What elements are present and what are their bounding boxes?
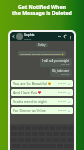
button[interactable]: And I love You (13, 90, 71, 95)
button[interactable]: I will call you tonight (42, 59, 70, 66)
staticText: Scotts need to night (13, 99, 47, 104)
button[interactable]: Ok, take care (52, 69, 70, 76)
button[interactable]: For Dinner as 9:0ne (13, 108, 71, 113)
button[interactable]: Scotts need to night (13, 99, 71, 104)
button[interactable]: More options (68, 35, 72, 39)
staticText: 9:55 am (58, 109, 67, 112)
button[interactable]: Call (63, 34, 68, 39)
staticText: 9:44 am (61, 73, 70, 76)
button[interactable]: Back (11, 34, 16, 39)
staticText: online (24, 37, 31, 40)
staticText: Ok, take care (52, 69, 70, 73)
button[interactable]: You are So Beautiful (13, 81, 71, 86)
staticText: Sophia (24, 33, 35, 37)
staticText: I will call you tonight (42, 59, 70, 63)
staticText: 9:52 am (58, 82, 67, 85)
button[interactable]: Video call (57, 34, 62, 39)
staticText: And I love You (13, 90, 37, 95)
staticText: Get Notified When the Message is Deleted (12, 3, 72, 16)
staticText: Messages are end-to-end encrypted 🔒 (20, 52, 64, 55)
staticText: 9:53 am (58, 91, 67, 94)
staticText: 9:54 am (58, 100, 67, 103)
staticText: You are So Beautiful (13, 81, 47, 86)
staticText: For Dinner as 9:0ne (13, 108, 46, 113)
staticText: 9:42 am (61, 63, 70, 66)
staticText: Today (38, 43, 46, 47)
